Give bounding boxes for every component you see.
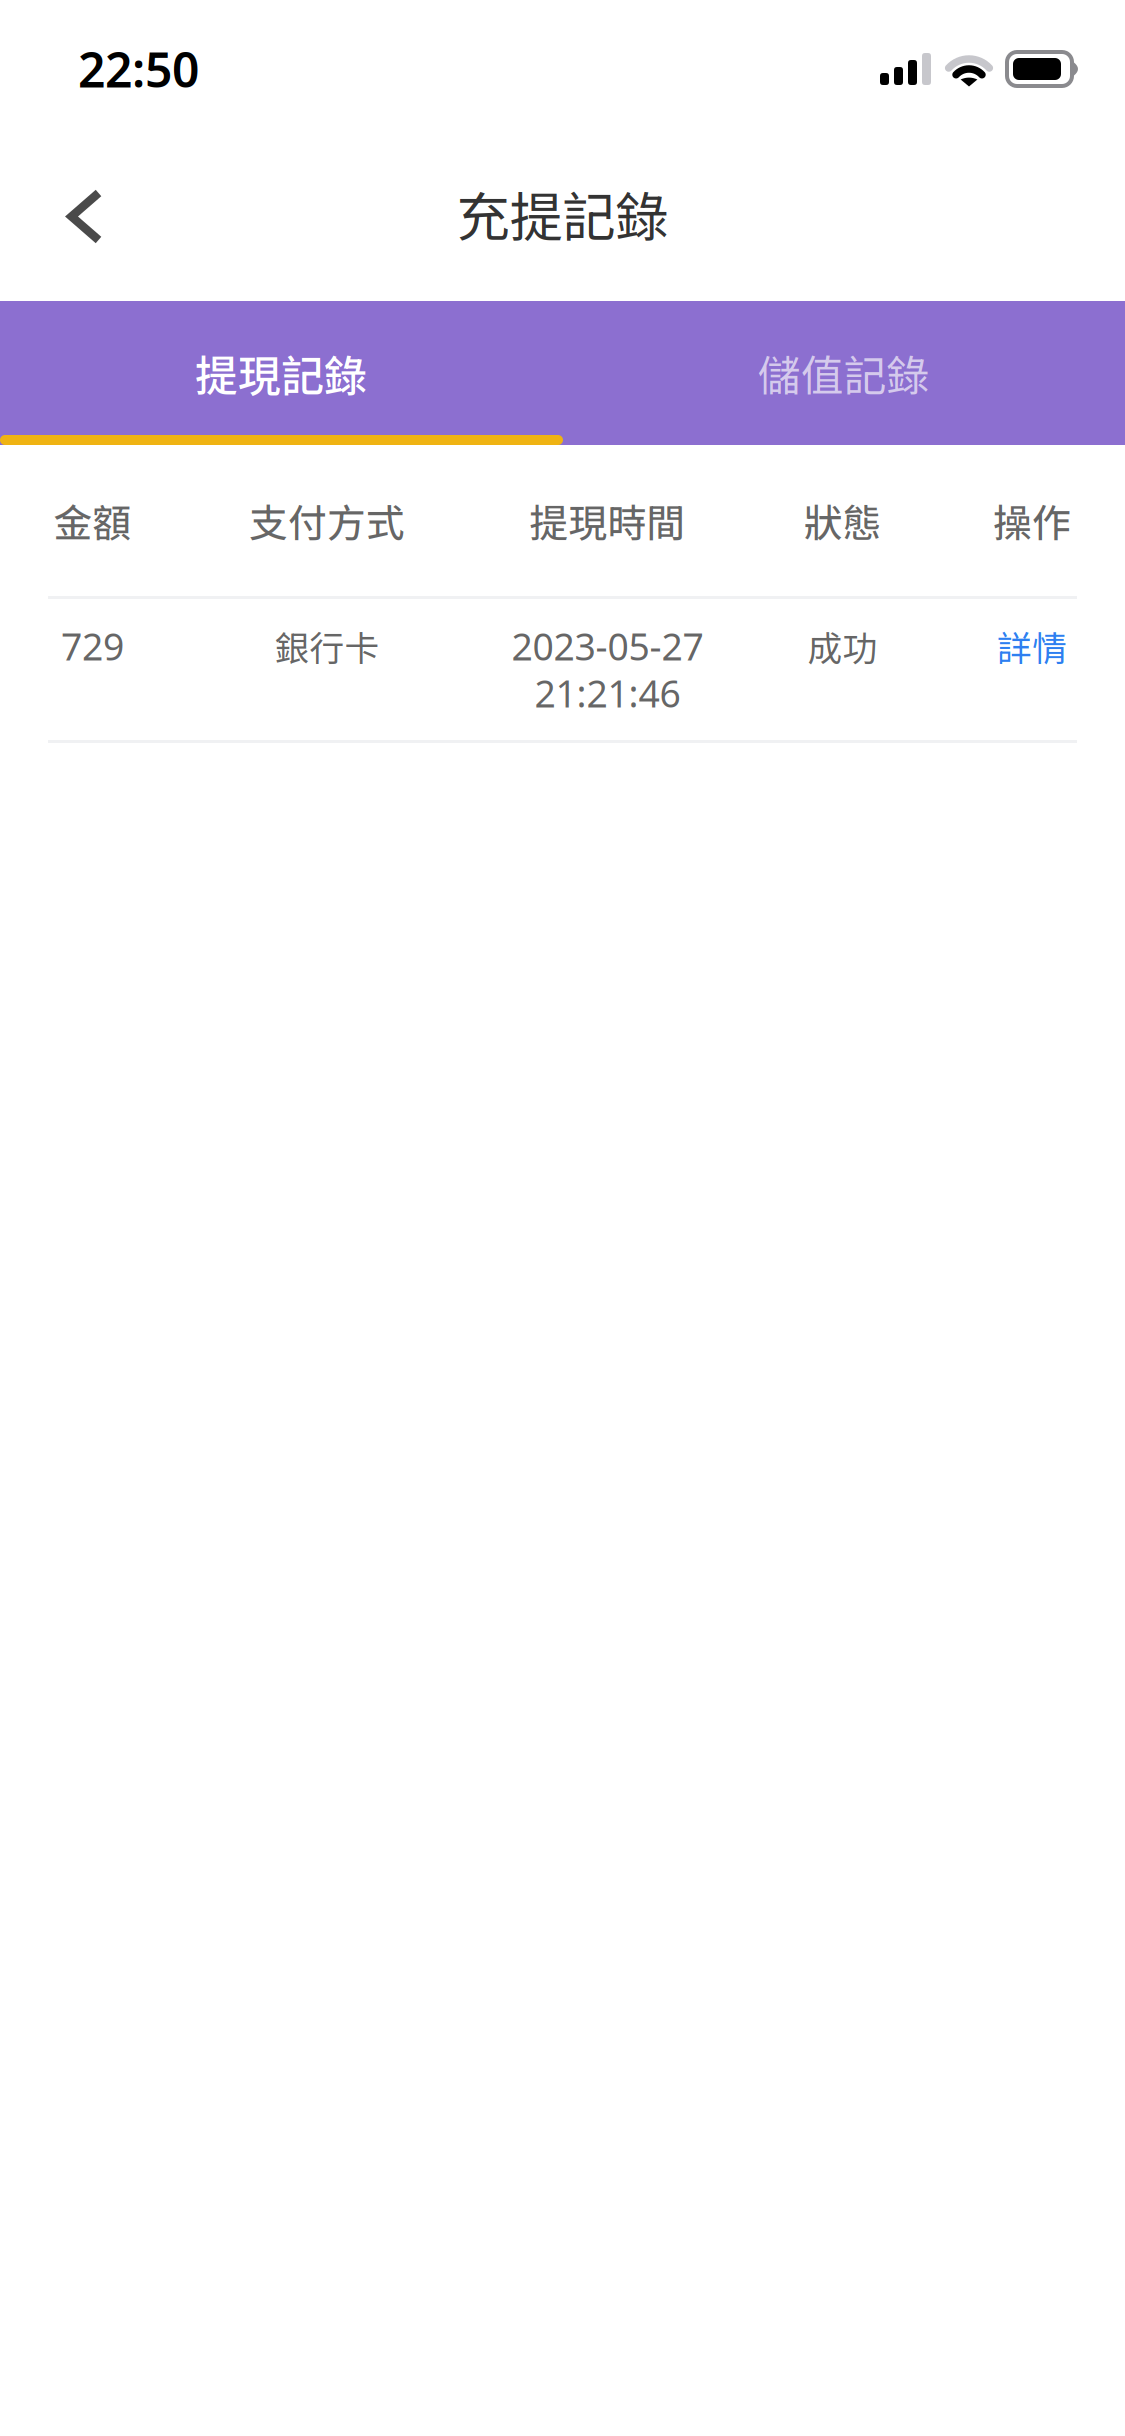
button[interactable]: 儲值記錄 bbox=[562, 301, 1125, 445]
staticText: 提現記錄 bbox=[195, 342, 367, 404]
staticText: 2023-05-27 bbox=[511, 621, 703, 671]
button[interactable]: 詳情 bbox=[939, 626, 1125, 666]
staticText: 成功 bbox=[807, 621, 877, 671]
staticText: 操作 bbox=[993, 492, 1071, 548]
staticText: 提現時間 bbox=[529, 492, 685, 548]
staticText: 儲值記錄 bbox=[758, 342, 930, 404]
staticText: 詳情 bbox=[997, 621, 1067, 671]
staticText: 狀態 bbox=[803, 492, 881, 548]
button[interactable]: 提現記錄 bbox=[0, 301, 562, 445]
staticText: 銀行卡 bbox=[274, 621, 379, 671]
staticText: 金額 bbox=[53, 492, 131, 548]
staticText: 充提記錄 bbox=[456, 175, 668, 252]
staticText: 729 bbox=[61, 621, 124, 671]
staticText: 22:50 bbox=[78, 37, 199, 101]
staticText: 支付方式 bbox=[249, 492, 405, 548]
staticText: 21:21:46 bbox=[534, 668, 680, 718]
button[interactable]: Back bbox=[37, 168, 133, 264]
